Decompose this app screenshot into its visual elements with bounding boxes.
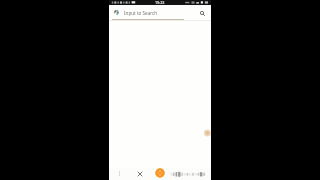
button[interactable]: Search [198, 9, 206, 17]
button[interactable]: Stop loading [135, 169, 144, 178]
button[interactable]: More options [168, 169, 210, 179]
button[interactable]: Input to Search [124, 10, 158, 16]
button[interactable]: Browser home [155, 168, 165, 178]
button[interactable]: Google [113, 9, 120, 16]
staticText: 19:23 [155, 0, 165, 5]
button[interactable]: Tabs [115, 169, 124, 178]
